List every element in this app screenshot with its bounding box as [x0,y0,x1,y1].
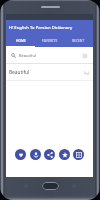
staticText: Beautiful [19,53,36,58]
button[interactable]: Favorite [15,149,26,160]
button[interactable]: Pronounce [30,149,41,160]
staticText: H! English To Persian Dictionary [9,25,73,31]
button[interactable]: Beautiful [6,64,93,81]
staticText: RECENT [72,38,85,42]
staticText: زيبا [84,70,90,75]
button[interactable]: FAVORITE [35,36,64,47]
button[interactable]: Copy [73,149,84,160]
staticText: FAVORITE [42,38,58,42]
staticText: Beautiful [9,69,30,76]
button[interactable]: HOME [6,36,35,47]
button[interactable]: Share [44,149,55,160]
button[interactable]: Rate [59,149,70,160]
button[interactable]: RECENT [64,36,93,47]
button[interactable]: Beautiful [6,47,93,64]
staticText: HOME [16,38,26,42]
